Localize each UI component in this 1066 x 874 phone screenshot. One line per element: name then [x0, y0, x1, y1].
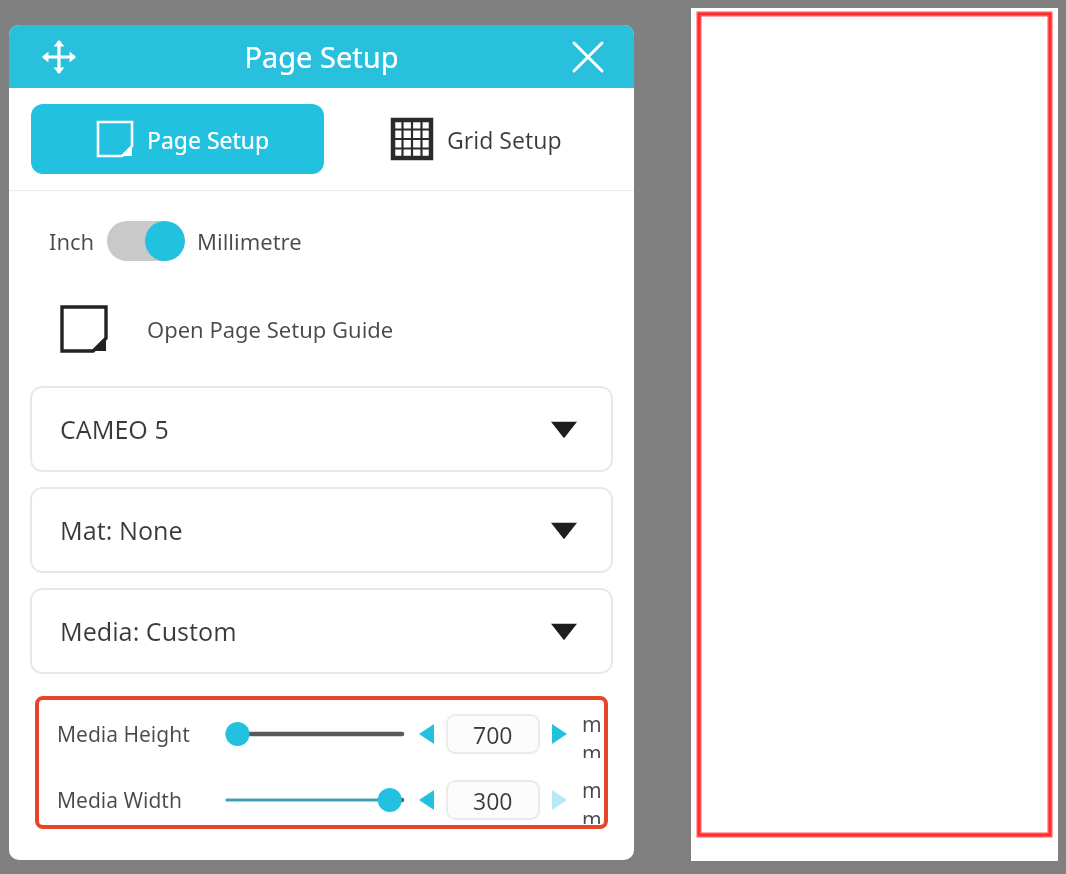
button[interactable]: Grid Setup [379, 104, 562, 174]
staticText: Media Width [57, 786, 182, 815]
button[interactable]: Media: Custom [30, 588, 613, 674]
button[interactable]: 700 [446, 714, 540, 754]
button[interactable] [227, 780, 402, 820]
staticText: 300 [473, 785, 513, 816]
button[interactable] [227, 714, 402, 754]
staticText: CAMEO 5 [60, 412, 169, 446]
staticText: Millimetre [197, 226, 302, 256]
staticText: Media: Custom [60, 614, 237, 648]
button[interactable]: Decrease Media Width [414, 787, 440, 813]
button[interactable]: Inch [49, 217, 302, 265]
button[interactable]: Increase Media Width [546, 787, 572, 813]
staticText: mm [582, 776, 608, 824]
button[interactable]: Close [566, 35, 610, 79]
button[interactable]: Mat: None [30, 487, 613, 573]
button[interactable]: Decrease Media Height [414, 721, 440, 747]
button[interactable]: 300 [446, 780, 540, 820]
staticText: mm [582, 710, 608, 758]
button[interactable]: Page Setup [31, 104, 324, 174]
button[interactable]: Move [37, 35, 81, 79]
staticText: 700 [473, 719, 513, 750]
staticText: Media Height [57, 720, 190, 749]
button[interactable]: Increase Media Height [546, 721, 572, 747]
staticText: Mat: None [60, 513, 183, 547]
button[interactable]: Open Page Setup Guide [61, 301, 394, 357]
button[interactable]: CAMEO 5 [30, 386, 613, 472]
staticText: Page Setup [147, 124, 270, 155]
staticText: Open Page Setup Guide [147, 314, 394, 344]
staticText: Page Setup [244, 37, 399, 76]
staticText: Inch [49, 226, 95, 256]
staticText: Grid Setup [447, 124, 562, 155]
